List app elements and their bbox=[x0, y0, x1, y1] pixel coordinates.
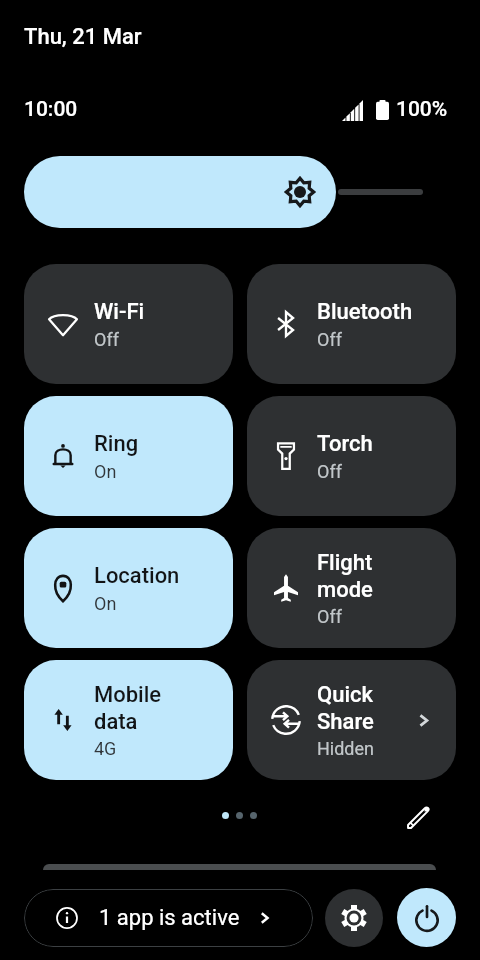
staticText: Bluetooth bbox=[317, 299, 413, 325]
staticText: 10:00 bbox=[24, 97, 78, 122]
staticText: On bbox=[94, 461, 117, 482]
button[interactable]: Brightness bbox=[24, 156, 336, 228]
staticText: Hidden bbox=[317, 738, 375, 759]
staticText: Flight mode bbox=[317, 550, 373, 602]
staticText: Mobile data bbox=[94, 682, 162, 734]
button[interactable]: Location bbox=[24, 528, 233, 648]
staticText: Ring bbox=[94, 431, 139, 457]
button[interactable]: Settings bbox=[325, 889, 383, 947]
staticText: Quick Share bbox=[317, 682, 374, 734]
button[interactable]: Wi-Fi bbox=[24, 264, 233, 384]
button[interactable]: Edit tiles bbox=[400, 799, 436, 835]
staticText: 1 app is active bbox=[99, 905, 240, 931]
staticText: 4G bbox=[94, 738, 117, 759]
staticText: Wi-Fi bbox=[94, 299, 145, 325]
staticText: Location bbox=[94, 563, 180, 589]
button[interactable]: Ring bbox=[24, 396, 233, 516]
staticText: Off bbox=[317, 606, 342, 627]
staticText: On bbox=[94, 593, 117, 614]
button[interactable]: Torch bbox=[247, 396, 456, 516]
button[interactable]: Quick Share bbox=[247, 660, 456, 780]
staticText: Torch bbox=[317, 431, 373, 457]
button[interactable]: 1 app is active bbox=[24, 889, 313, 947]
staticText: Thu, 21 Mar bbox=[24, 24, 142, 50]
button[interactable]: Bluetooth bbox=[247, 264, 456, 384]
button[interactable]: Power bbox=[397, 888, 456, 947]
staticText: Off bbox=[317, 461, 342, 482]
button[interactable]: Mobile data bbox=[24, 660, 233, 780]
staticText: 100% bbox=[396, 97, 448, 122]
staticText: Off bbox=[317, 329, 342, 350]
staticText: Off bbox=[94, 329, 119, 350]
button[interactable]: Flight mode bbox=[247, 528, 456, 648]
